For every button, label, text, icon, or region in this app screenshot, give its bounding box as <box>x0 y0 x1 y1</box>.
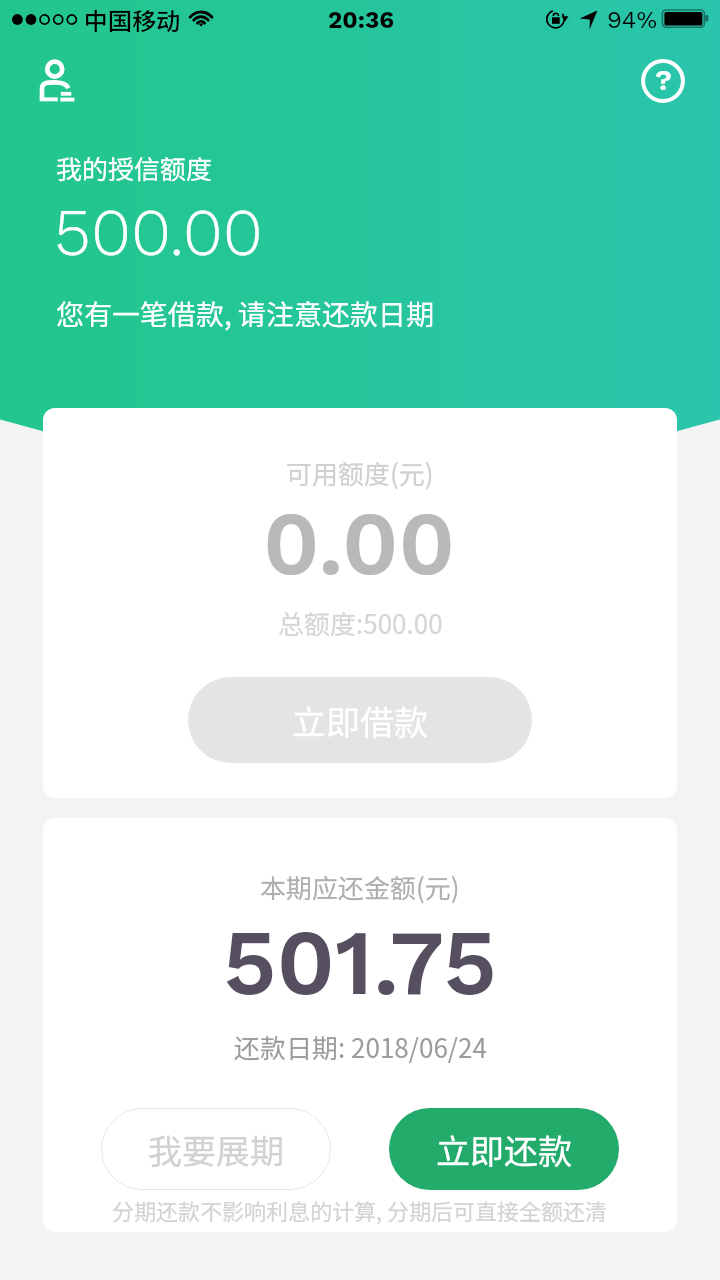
button[interactable]: Help <box>626 46 700 116</box>
button[interactable]: 立即借款 <box>188 677 532 763</box>
staticText: 0.00 <box>263 491 456 595</box>
staticText: ? <box>655 63 672 97</box>
staticText: 您有一笔借款, 请注意还款日期 <box>56 293 435 334</box>
staticText: 中国移动 <box>84 2 180 37</box>
staticText: 分期还款不影响利息的计算, 分期后可直接全额还清 <box>112 1194 608 1226</box>
staticText: 总额度:500.00 <box>278 604 443 642</box>
staticText: 我要展期 <box>148 1125 284 1174</box>
staticText: 还款日期: 2018/06/24 <box>234 1028 487 1066</box>
staticText: 501.75 <box>223 908 497 1016</box>
staticText: 我的授信额度 <box>56 149 213 187</box>
staticText: 立即还款 <box>436 1125 572 1174</box>
staticText: 20:36 <box>328 6 395 34</box>
staticText: 500.00 <box>54 194 263 271</box>
staticText: 可用额度(元) <box>286 454 434 492</box>
staticText: 94% <box>607 6 658 34</box>
staticText: 立即借款 <box>292 696 428 745</box>
staticText: 本期应还金额(元) <box>260 868 460 906</box>
button[interactable]: 我要展期 <box>101 1108 331 1190</box>
button[interactable]: 立即还款 <box>389 1108 619 1190</box>
button[interactable]: Profile <box>21 41 91 117</box>
